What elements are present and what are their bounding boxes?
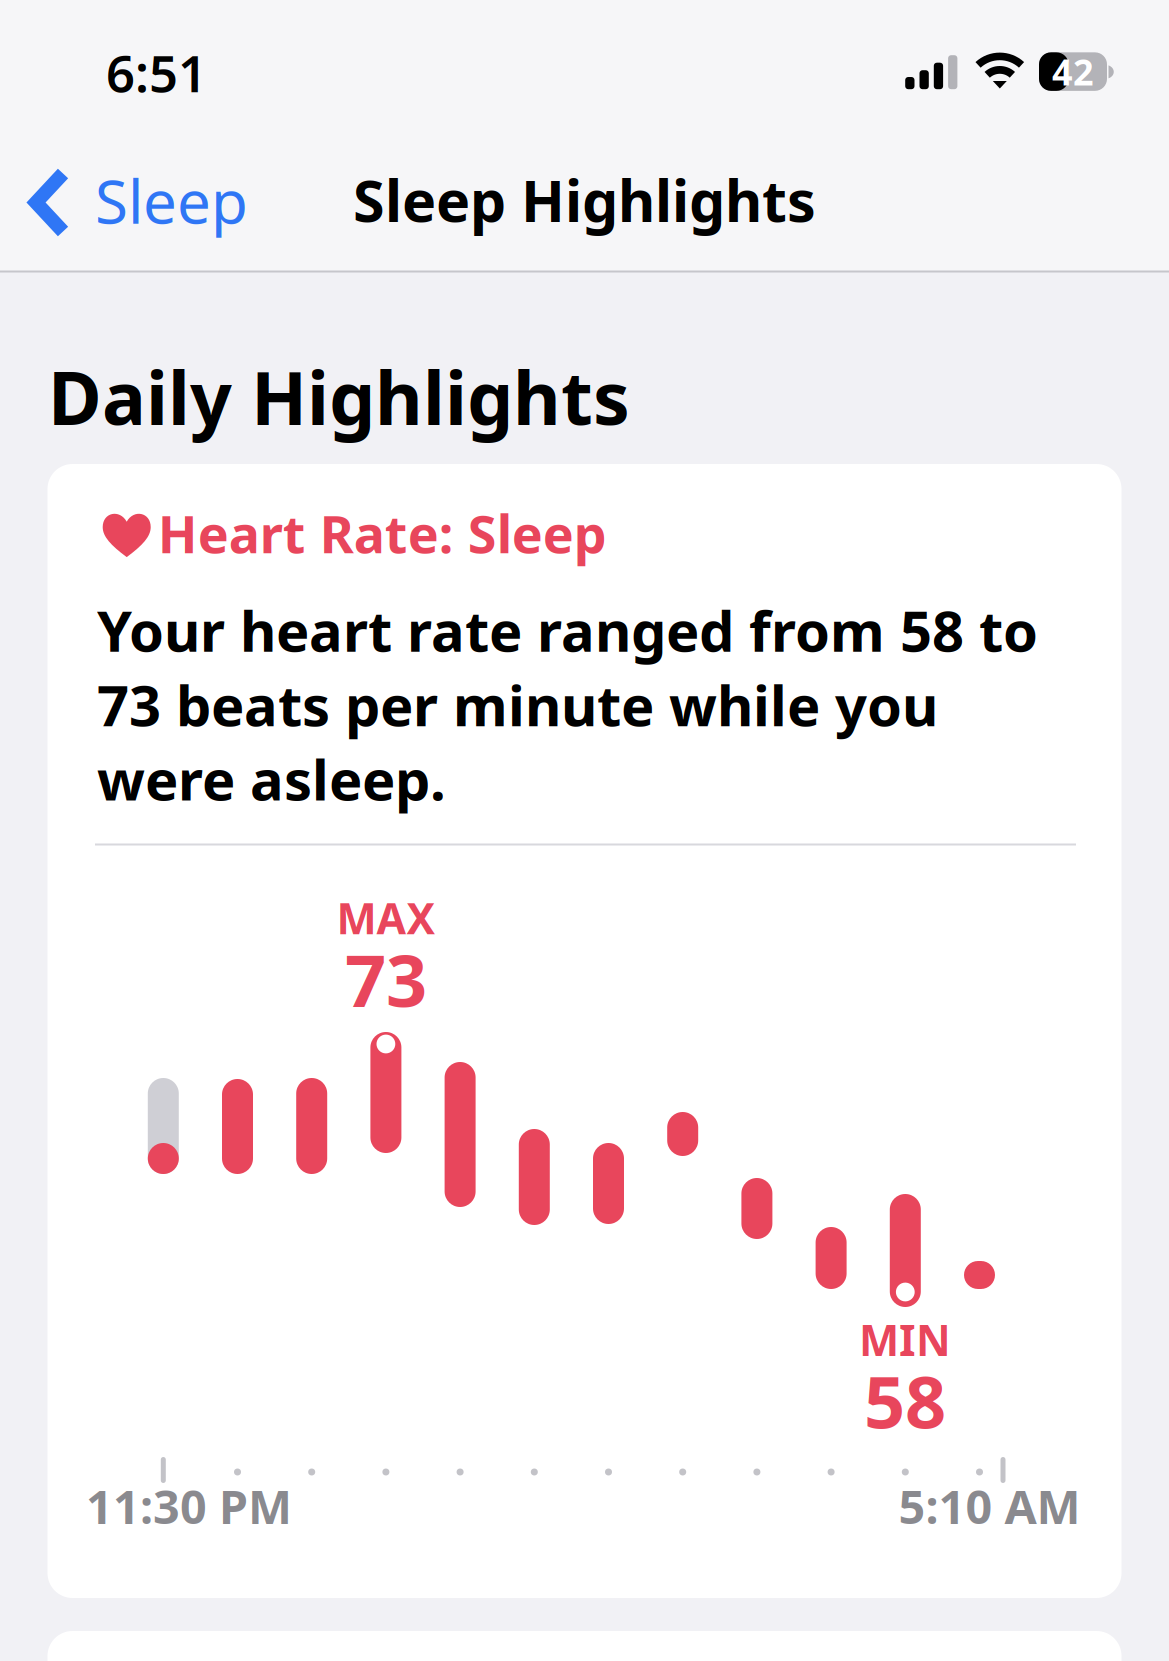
staticText: 58 [864,1353,946,1448]
staticText: Sleep [95,161,248,240]
staticText: MAX [336,889,435,946]
staticText: Your heart rate ranged from 58 to 73 bea… [97,593,1038,816]
staticText: 11:30 PM [86,1475,292,1537]
button[interactable]: Sleep [0,142,275,262]
staticText: Heart Rate: Sleep [158,498,607,568]
staticText: Daily Highlights [48,348,630,445]
staticText: MIN [859,1311,951,1368]
staticText: 6:51 [106,39,207,106]
staticText: 42 [1052,48,1094,95]
button[interactable]: Heart Rate: Sleep [47,464,1121,1598]
staticText: 5:10 AM [898,1475,1080,1537]
staticText: 73 [345,931,427,1027]
staticText: Sleep Highlights [353,162,816,238]
